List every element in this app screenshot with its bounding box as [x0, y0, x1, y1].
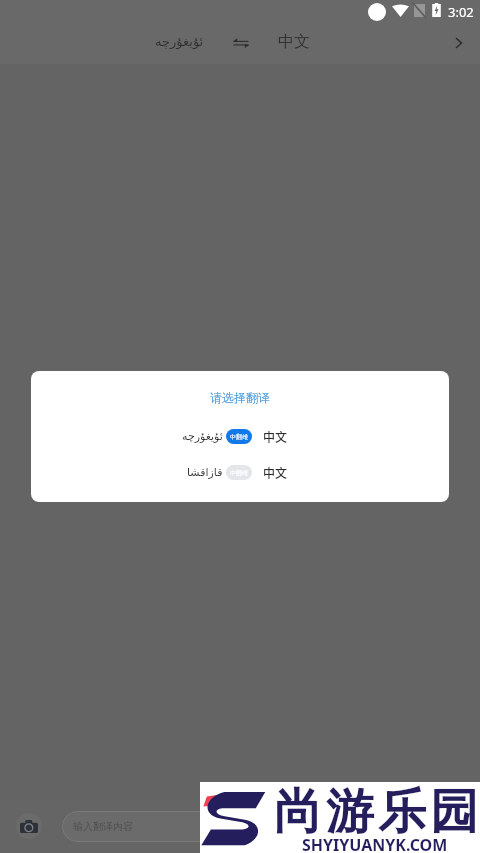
staticText: 中文 [263, 464, 288, 481]
staticText: قازاقشا [187, 466, 223, 479]
button[interactable]: More [444, 28, 474, 58]
staticText: 请选择翻译 [31, 390, 449, 405]
staticText: 中文 [263, 428, 288, 445]
button[interactable]: 输入翻译内容 [62, 811, 402, 842]
staticText: 中文 [278, 32, 310, 52]
other: Swap languages [233, 35, 249, 51]
staticText: ئۇيغۇرچە [182, 430, 223, 443]
staticText: SHYIYUANYK.COM [302, 834, 448, 853]
staticText: ئۇيغۇرچە [155, 34, 204, 49]
staticText: 3:02 [448, 3, 474, 21]
staticText: 尚游乐园 [272, 782, 480, 842]
staticText: 中翻维 [230, 433, 248, 441]
button[interactable]: قازاقشا [31, 457, 449, 487]
staticText: 中翻维 [230, 469, 248, 477]
staticText: 输入翻译内容 [73, 820, 133, 833]
button[interactable]: ئۇيغۇرچە [31, 421, 449, 451]
button[interactable]: Camera [16, 813, 42, 839]
